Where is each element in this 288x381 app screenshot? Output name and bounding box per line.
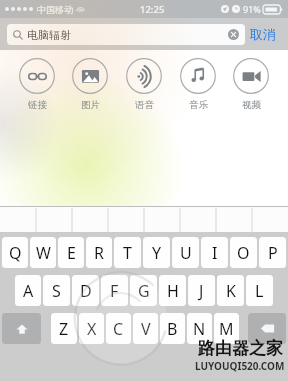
button[interactable]: U <box>172 237 199 268</box>
staticText: S <box>52 280 61 302</box>
button[interactable]: V <box>133 313 158 344</box>
button[interactable]: P <box>259 237 286 268</box>
button[interactable]: X <box>79 313 104 344</box>
staticText: 电脑辐射 <box>27 28 71 42</box>
staticText: 取消 <box>250 26 276 42</box>
button[interactable]: 音乐 <box>178 56 218 113</box>
button[interactable]: 电脑辐射 <box>7 24 245 45</box>
button[interactable]: K <box>217 275 244 306</box>
staticText: W <box>36 242 51 264</box>
button[interactable]: A <box>15 275 41 306</box>
staticText: P <box>268 242 278 264</box>
staticText: G <box>138 280 150 302</box>
staticText: A <box>23 280 34 302</box>
button[interactable]: W <box>30 237 56 268</box>
button[interactable]: R <box>86 237 112 268</box>
staticText: D <box>80 280 92 302</box>
button[interactable]: H <box>159 275 186 306</box>
button[interactable]: N <box>187 313 212 344</box>
staticText: Y <box>152 242 162 264</box>
staticText: T <box>123 242 132 264</box>
button[interactable]: Z <box>51 313 77 344</box>
button[interactable]: 链接 <box>17 56 57 113</box>
staticText: M <box>219 318 234 340</box>
button[interactable]: S <box>43 275 70 306</box>
staticText: O <box>237 242 250 264</box>
staticText: Q <box>9 242 22 264</box>
staticText: V <box>141 318 151 340</box>
staticText: E <box>67 242 76 264</box>
button[interactable]: T <box>114 237 141 268</box>
button[interactable]: I <box>201 237 228 268</box>
staticText: 链接 <box>28 99 47 111</box>
button[interactable]: Backspace <box>248 313 286 344</box>
staticText: C <box>113 318 124 340</box>
staticText: X <box>87 318 97 340</box>
button[interactable]: Q <box>2 237 28 268</box>
button[interactable]: M <box>214 313 239 344</box>
staticText: N <box>193 318 206 340</box>
staticText: 12:25 <box>140 3 165 16</box>
button[interactable]: J <box>188 275 215 306</box>
staticText: U <box>180 242 192 264</box>
staticText: 中国移动 <box>37 4 73 15</box>
button[interactable]: D <box>72 275 99 306</box>
staticText: B <box>167 318 178 340</box>
button[interactable]: F <box>101 275 128 306</box>
staticText: 语音 <box>135 99 154 111</box>
button[interactable]: G <box>130 275 157 306</box>
button[interactable]: O <box>230 237 257 268</box>
button[interactable]: C <box>106 313 131 344</box>
button[interactable]: 取消 <box>245 22 281 46</box>
button[interactable]: B <box>160 313 185 344</box>
button[interactable]: 视频 <box>231 56 271 113</box>
button[interactable]: E <box>58 237 84 268</box>
staticText: J <box>199 280 204 302</box>
button[interactable]: L <box>246 275 273 306</box>
staticText: 图片 <box>81 99 100 111</box>
staticText: H <box>167 280 179 302</box>
button[interactable]: Y <box>143 237 170 268</box>
staticText: 路由器之家 <box>198 338 283 359</box>
staticText: LUYOUQI520.COM <box>195 359 285 373</box>
staticText: 音乐 <box>189 99 208 111</box>
staticText: K <box>226 280 236 302</box>
button[interactable]: Clear text <box>228 29 239 40</box>
button[interactable]: Shift <box>2 313 41 344</box>
button[interactable]: 图片 <box>70 56 110 113</box>
staticText: L <box>255 280 264 302</box>
button[interactable]: 语音 <box>124 56 164 113</box>
staticText: F <box>110 280 119 302</box>
staticText: Z <box>59 318 69 340</box>
staticText: 91% <box>243 3 261 15</box>
staticText: I <box>212 242 218 264</box>
staticText: 视频 <box>242 99 261 111</box>
staticText: R <box>94 242 104 264</box>
